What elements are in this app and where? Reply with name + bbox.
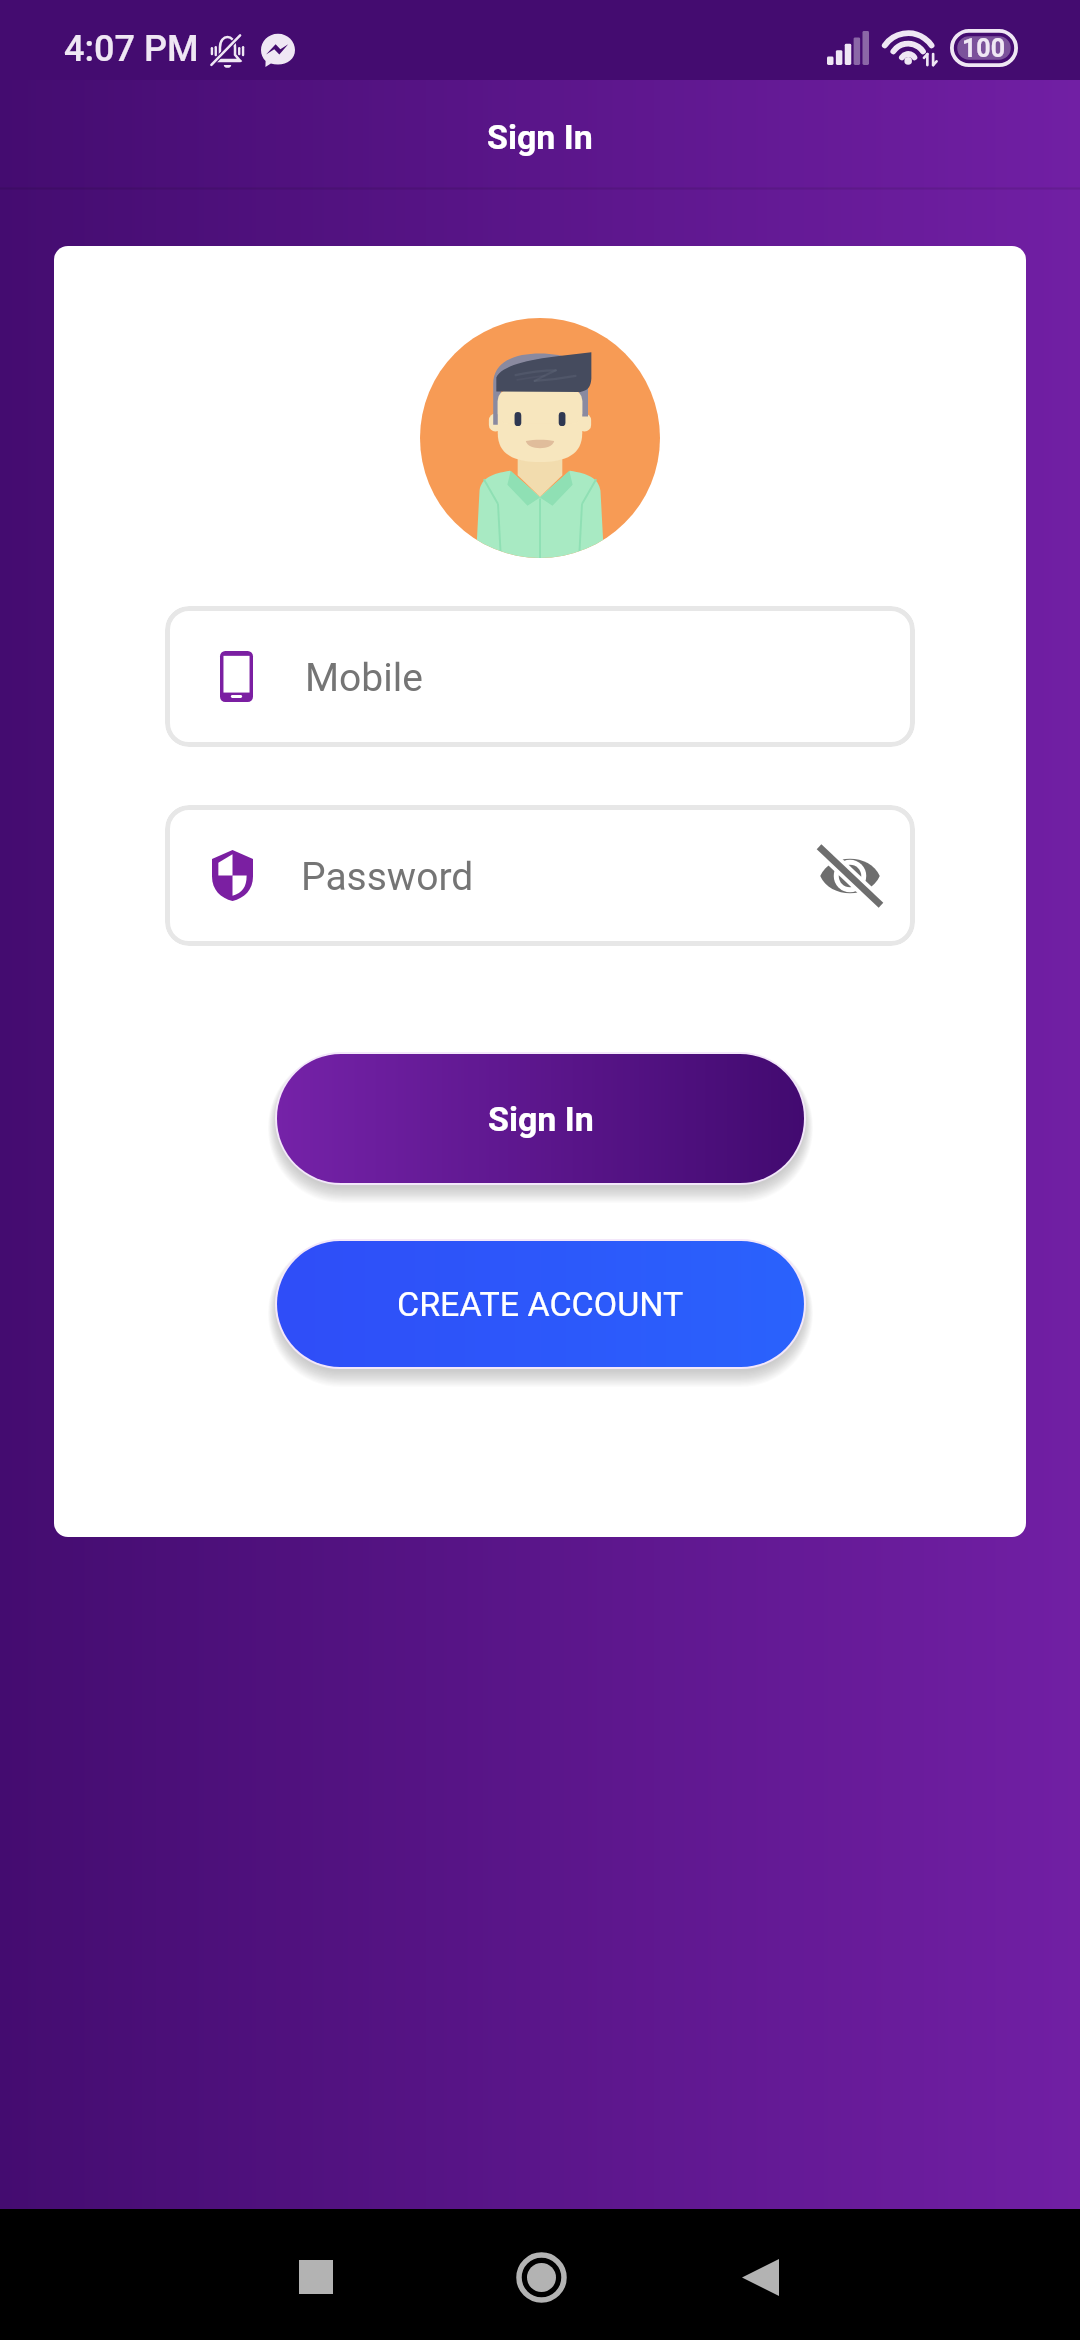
button[interactable]: Home [496,2232,586,2322]
staticText: Mobile [305,655,423,701]
button[interactable]: Back [715,2232,805,2322]
staticText: Sign In [487,117,593,157]
staticText: 4:07 PM [64,28,199,70]
button[interactable]: Sign In [277,1054,804,1183]
staticText: CREATE ACCOUNT [397,1284,684,1324]
staticText: Password [301,854,474,900]
button[interactable]: Recents [271,2232,361,2322]
staticText: Sign In [488,1099,594,1139]
staticText: 100 [962,34,1006,63]
button[interactable]: Mobile [165,606,915,747]
button[interactable]: CREATE ACCOUNT [277,1241,804,1367]
button[interactable]: Show password [802,828,898,924]
button[interactable]: Password [165,805,915,946]
